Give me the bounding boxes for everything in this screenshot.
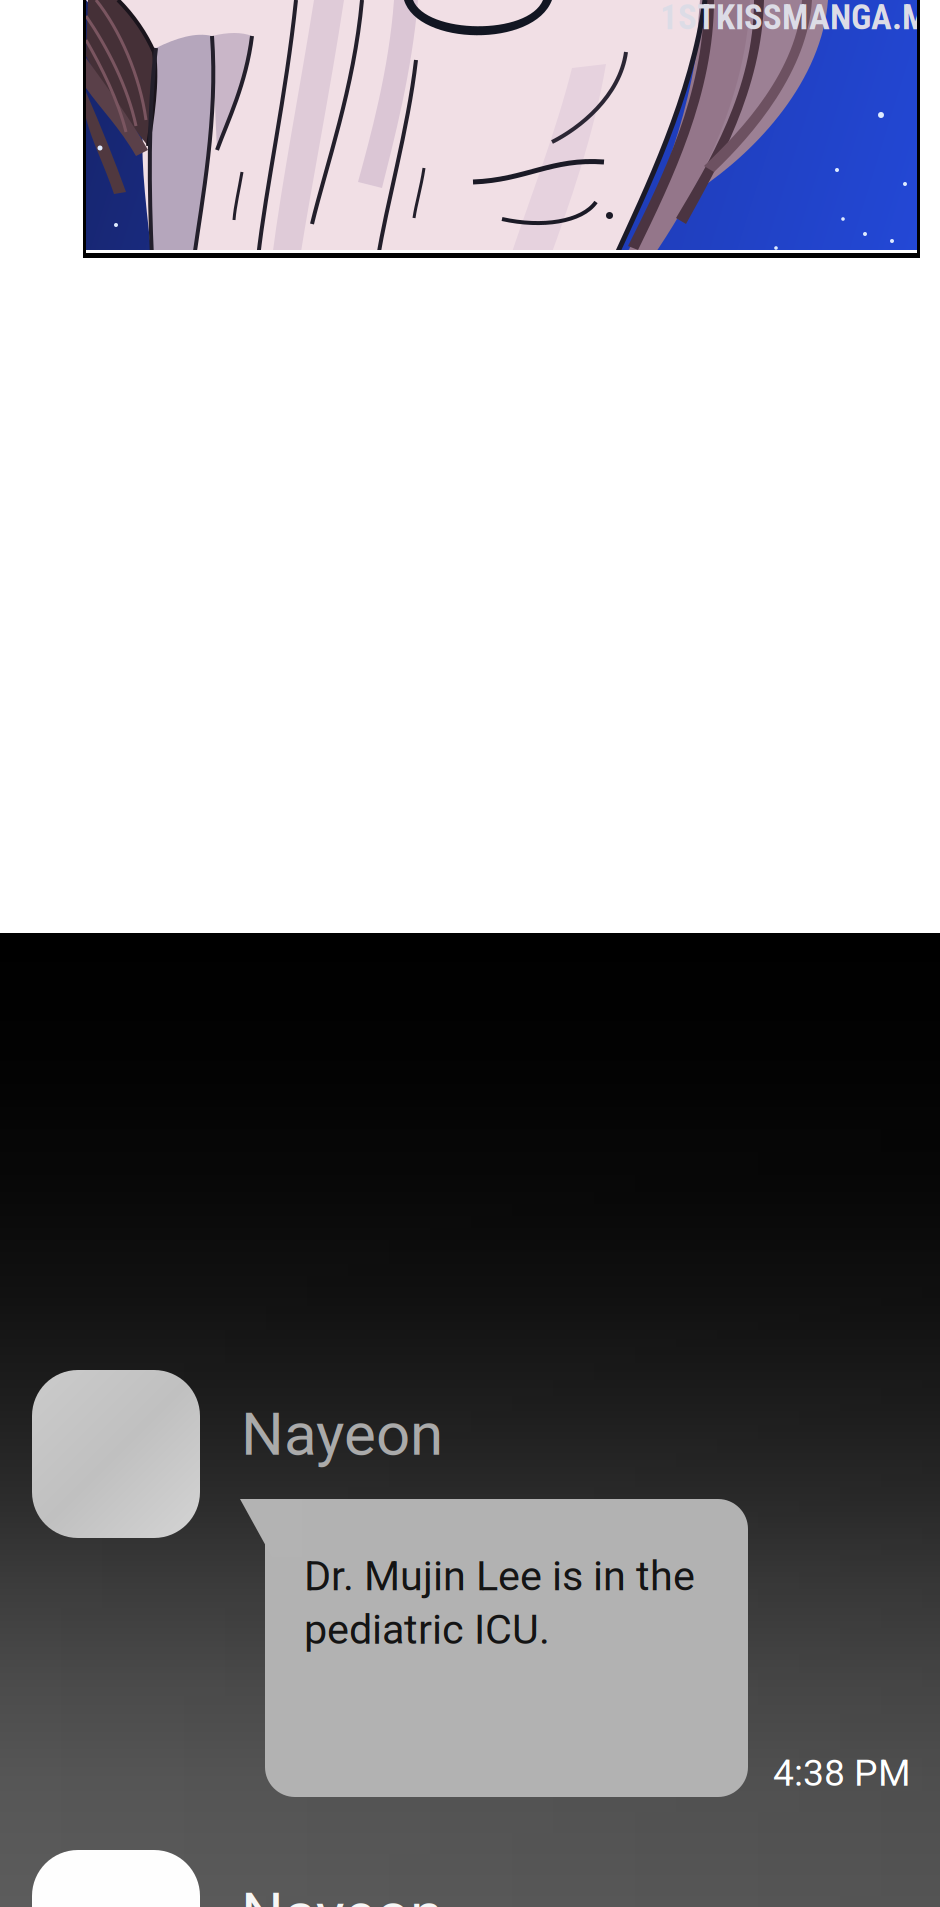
staticText: 1STKISSMANGA.ME — [660, 0, 940, 38]
staticText: Nayeon — [241, 1879, 443, 1907]
staticText: pediatric ICU. — [304, 1605, 550, 1654]
staticText: Dr. Mujin Lee is in the — [304, 1552, 695, 1600]
button[interactable]: Nayeon profile picture — [32, 1370, 200, 1538]
staticText: 4:38 PM — [773, 1751, 911, 1795]
button[interactable]: Nayeon profile picture — [32, 1850, 200, 1907]
staticText: Nayeon — [241, 1399, 443, 1469]
button[interactable]: Dr. Mujin Lee is in the — [240, 1499, 748, 1797]
